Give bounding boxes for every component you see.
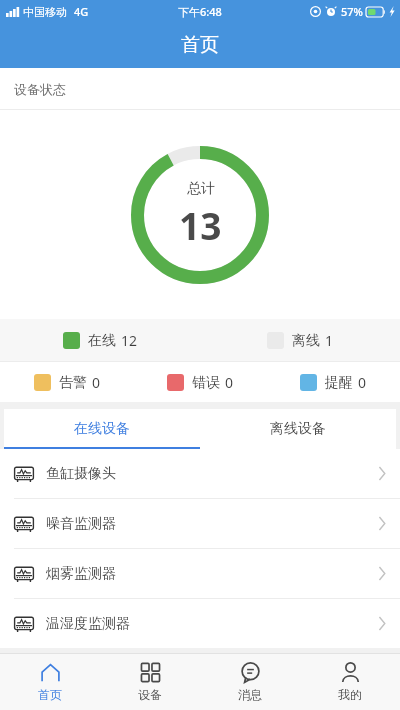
other: 消息 — [240, 662, 261, 683]
staticText: 设备状态 — [14, 81, 66, 97]
button[interactable]: 错误 — [163, 369, 238, 396]
staticText: 消息 — [238, 687, 262, 702]
button[interactable]: 设备 — [100, 654, 200, 710]
button[interactable]: 在线设备 — [4, 409, 200, 449]
staticText: 首页 — [38, 687, 62, 702]
staticText: 0 — [225, 373, 234, 392]
staticText: 首页 — [181, 33, 219, 57]
staticText: 总计 — [187, 180, 215, 198]
button[interactable]: 提醒 — [296, 369, 371, 396]
button[interactable]: 离线设备 — [200, 409, 396, 449]
staticText: 我的 — [338, 687, 362, 702]
other: 设备 — [140, 662, 161, 683]
staticText: 离线设备 — [270, 420, 326, 438]
staticText: 0 — [358, 373, 367, 392]
button[interactable]: 温湿度监测器 — [0, 599, 400, 648]
button[interactable]: 烟雾监测器 — [0, 549, 400, 598]
button[interactable]: 消息 — [200, 654, 300, 710]
staticText: 4G — [74, 4, 89, 19]
other: 我的 — [340, 662, 361, 683]
button[interactable]: 告警 — [30, 369, 105, 396]
button[interactable]: 鱼缸摄像头 — [0, 449, 400, 498]
staticText: 噪音监测器 — [46, 515, 116, 533]
staticText: 1 — [325, 331, 334, 350]
staticText: 0 — [92, 373, 101, 392]
staticText: 13 — [179, 200, 222, 250]
button[interactable]: 我的 — [300, 654, 400, 710]
staticText: 12 — [121, 331, 138, 350]
staticText: 离线 — [292, 332, 320, 350]
staticText: 在线设备 — [74, 420, 130, 438]
staticText: 设备 — [138, 687, 162, 702]
staticText: 温湿度监测器 — [46, 615, 130, 633]
button[interactable]: 首页 — [0, 654, 100, 710]
staticText: 烟雾监测器 — [46, 565, 116, 583]
button[interactable]: 在线 — [59, 327, 142, 354]
staticText: 57% — [341, 4, 363, 19]
staticText: 鱼缸摄像头 — [46, 465, 116, 483]
staticText: 中国移动 — [23, 5, 67, 19]
other: 首页 — [40, 662, 61, 683]
button[interactable]: 离线 — [263, 327, 338, 354]
staticText: 提醒 — [325, 374, 353, 392]
staticText: 错误 — [192, 374, 220, 392]
staticText: 告警 — [59, 374, 87, 392]
staticText: 下午6:48 — [178, 4, 222, 19]
button[interactable]: 噪音监测器 — [0, 499, 400, 548]
staticText: 在线 — [88, 332, 116, 350]
